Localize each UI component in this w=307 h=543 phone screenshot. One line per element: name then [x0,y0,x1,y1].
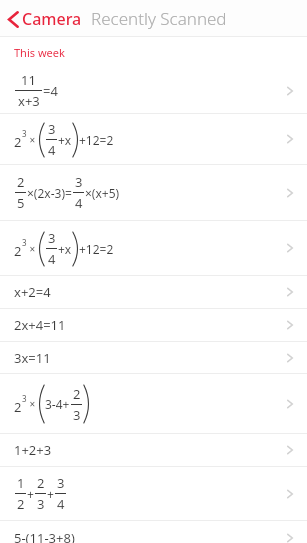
staticText: 3-4+ [45,396,70,412]
button[interactable]: 2x+4=11 [0,309,307,342]
staticText: 3 [73,406,81,424]
staticText: + [27,486,34,502]
button[interactable]: 2 [0,221,307,276]
staticText: ×(x+5) [85,185,120,201]
button[interactable]: 1 [0,467,307,521]
staticText: +12=2 [79,132,114,148]
staticText: +x [58,132,72,148]
staticText: 2 [14,242,22,260]
staticText: x+2=4 [14,283,51,301]
staticText: ×(2x-3)= [27,185,72,201]
staticText: Camera [22,8,82,30]
staticText: =4 [43,82,58,100]
button[interactable]: 1+2+3 [0,434,307,467]
staticText: 3 [22,128,27,139]
staticText: +12=2 [79,241,114,257]
staticText: 3 [22,237,27,248]
button[interactable]: 11 [0,68,307,114]
staticText: 4 [48,250,56,268]
staticText: 2 [14,398,22,416]
staticText: × [27,397,38,411]
staticText: 5-(11-3+8) [14,529,75,543]
staticText: 2 [73,385,81,403]
staticText: 4 [57,495,65,513]
staticText: 3 [57,474,65,492]
staticText: + [47,486,54,502]
staticText: x+3 [18,92,40,110]
staticText: 5 [17,194,25,212]
staticText: This week [14,45,65,60]
staticText: 4 [75,194,83,212]
button[interactable]: 5-(11-3+8) [0,521,307,543]
staticText: 3 [75,173,83,191]
other: Back [7,10,20,29]
staticText: × [27,242,38,256]
staticText: 2 [37,474,45,492]
button[interactable]: 2 [0,114,307,165]
staticText: 1 [17,474,25,492]
staticText: × [27,133,38,147]
staticText: 3 [37,495,45,513]
button[interactable]: 3x=11 [0,342,307,374]
staticText: 2 [14,133,22,151]
staticText: 1+2+3 [14,441,52,459]
staticText: +x [58,241,72,257]
staticText: Recently Scanned [91,7,227,30]
button[interactable]: x+2=4 [0,276,307,309]
staticText: 4 [48,141,56,159]
staticText: 3 [48,229,56,247]
button[interactable]: 2 [0,374,307,434]
button[interactable]: Back [5,4,84,34]
staticText: 3 [22,393,27,404]
staticText: 2x+4=11 [14,316,66,334]
staticText: 11 [21,71,36,89]
staticText: 3x=11 [14,349,51,367]
button[interactable]: 2 [0,165,307,221]
staticText: 3 [48,120,56,138]
staticText: 2 [17,173,25,191]
staticText: 2 [17,495,25,513]
